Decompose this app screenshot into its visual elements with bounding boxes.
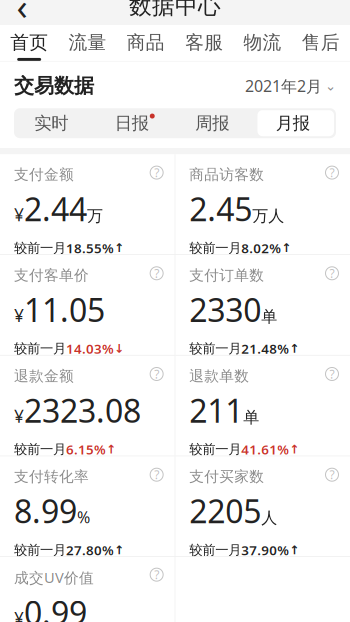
staticText: 2.44 bbox=[24, 188, 87, 230]
staticText: ↑ bbox=[289, 543, 299, 557]
staticText: % bbox=[77, 506, 90, 528]
staticText: 日报 bbox=[115, 113, 149, 134]
staticText: 支付买家数 bbox=[189, 468, 264, 486]
staticText: 37.90% bbox=[241, 541, 289, 559]
button[interactable]: 流量 bbox=[58, 25, 117, 61]
staticText: 单 bbox=[243, 407, 259, 427]
staticText: 11.05 bbox=[24, 288, 105, 331]
staticText: 数据中心 bbox=[129, 0, 221, 20]
staticText: ? bbox=[154, 265, 159, 281]
button[interactable]: Help bbox=[322, 263, 342, 283]
staticText: ? bbox=[154, 467, 159, 483]
staticText: 成交UV价值 bbox=[14, 568, 94, 587]
staticText: 人 bbox=[261, 508, 277, 528]
staticText: 单 bbox=[261, 307, 277, 326]
staticText: ↓ bbox=[114, 342, 124, 355]
button[interactable]: 售后 bbox=[292, 25, 350, 61]
staticText: ? bbox=[329, 467, 334, 483]
staticText: 万 bbox=[87, 206, 103, 226]
staticText: 商品访客数 bbox=[189, 166, 264, 184]
button[interactable]: Help bbox=[322, 163, 342, 183]
staticText: ‹ bbox=[16, 0, 27, 30]
staticText: 实时 bbox=[34, 113, 68, 134]
staticText: ? bbox=[154, 567, 159, 583]
button[interactable]: 物流 bbox=[233, 25, 292, 61]
button[interactable]: 2021年2月 bbox=[245, 75, 336, 96]
staticText: 41.61% bbox=[241, 440, 289, 458]
button[interactable]: Help bbox=[147, 263, 167, 283]
button[interactable]: Help bbox=[322, 465, 342, 485]
staticText: ? bbox=[329, 265, 334, 281]
staticText: 18.55% bbox=[66, 239, 114, 257]
button[interactable]: 实时 bbox=[14, 108, 94, 138]
staticText: ¥ bbox=[14, 404, 24, 427]
staticText: ? bbox=[154, 165, 159, 180]
button[interactable]: 首页 bbox=[0, 25, 58, 61]
staticText: 2.45 bbox=[189, 188, 252, 230]
staticText: 8.99 bbox=[14, 490, 77, 532]
button[interactable]: 月报 bbox=[255, 108, 336, 138]
staticText: 退款金额 bbox=[14, 367, 74, 385]
button[interactable]: 周报 bbox=[175, 108, 255, 138]
staticText: 流量 bbox=[68, 31, 106, 54]
staticText: 售后 bbox=[302, 31, 340, 54]
staticText: 支付转化率 bbox=[14, 468, 89, 486]
staticText: 2205 bbox=[189, 490, 261, 532]
staticText: ↑ bbox=[106, 442, 116, 456]
staticText: 退款单数 bbox=[189, 367, 249, 385]
staticText: 较前一月 bbox=[14, 340, 66, 357]
staticText: 211 bbox=[189, 389, 243, 431]
staticText: 较前一月 bbox=[189, 542, 241, 558]
staticText: 2021年2月 bbox=[245, 75, 322, 96]
staticText: 较前一月 bbox=[189, 340, 241, 357]
staticText: 8.02% bbox=[241, 239, 281, 257]
staticText: 周报 bbox=[195, 113, 229, 134]
staticText: 27.80% bbox=[66, 541, 114, 559]
button[interactable]: Help bbox=[147, 163, 167, 183]
staticText: 21.48% bbox=[241, 340, 289, 357]
staticText: ⌄ bbox=[325, 78, 336, 93]
staticText: ¥ bbox=[14, 203, 24, 226]
staticText: 首页 bbox=[10, 31, 48, 54]
staticText: ? bbox=[329, 366, 334, 382]
staticText: 较前一月 bbox=[189, 240, 241, 256]
button[interactable]: Back bbox=[0, 0, 44, 25]
staticText: ¥ bbox=[14, 304, 24, 327]
staticText: 较前一月 bbox=[14, 542, 66, 558]
staticText: 6.15% bbox=[66, 440, 106, 458]
staticText: 较前一月 bbox=[189, 441, 241, 458]
staticText: 支付客单价 bbox=[14, 266, 89, 284]
staticText: 商品 bbox=[127, 31, 165, 54]
staticText: 0.99 bbox=[24, 591, 87, 622]
staticText: 2323.08 bbox=[24, 389, 141, 431]
staticText: 万人 bbox=[252, 206, 284, 226]
staticText: 较前一月 bbox=[14, 240, 66, 256]
staticText: 交易数据 bbox=[14, 74, 94, 98]
staticText: ¥ bbox=[14, 607, 24, 622]
staticText: 客服 bbox=[185, 31, 223, 54]
staticText: 2330 bbox=[189, 288, 261, 331]
button[interactable]: 客服 bbox=[175, 25, 233, 61]
button[interactable]: Help bbox=[322, 364, 342, 384]
staticText: ↑ bbox=[114, 543, 124, 557]
button[interactable]: Help bbox=[147, 364, 167, 384]
staticText: 月报 bbox=[276, 113, 310, 134]
staticText: 较前一月 bbox=[14, 441, 66, 458]
staticText: ↑ bbox=[114, 241, 124, 255]
staticText: 支付订单数 bbox=[189, 266, 264, 284]
staticText: ? bbox=[154, 366, 159, 382]
staticText: 支付金额 bbox=[14, 166, 74, 184]
staticText: ↑ bbox=[289, 442, 299, 456]
button[interactable]: Help bbox=[147, 465, 167, 485]
staticText: 14.03% bbox=[66, 340, 114, 357]
staticText: 物流 bbox=[243, 31, 281, 54]
staticText: ↑ bbox=[289, 342, 299, 355]
button[interactable]: 商品 bbox=[117, 25, 175, 61]
button[interactable]: Help bbox=[147, 565, 167, 585]
staticText: ↑ bbox=[281, 241, 291, 255]
button[interactable]: 日报 bbox=[94, 108, 175, 138]
staticText: ? bbox=[329, 165, 334, 180]
